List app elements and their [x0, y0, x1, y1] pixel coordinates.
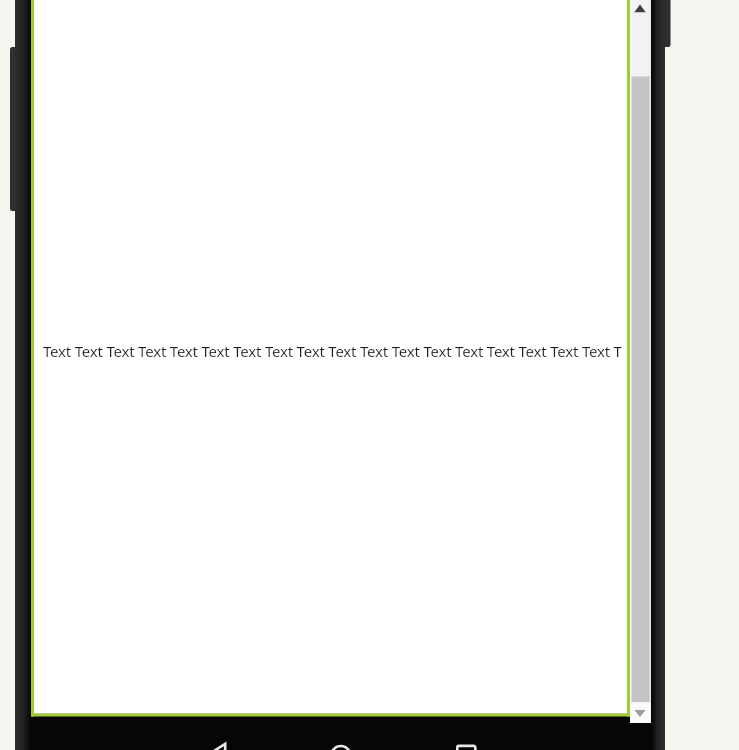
button[interactable] [630, 0, 651, 16]
button[interactable] [324, 735, 358, 750]
button[interactable] [450, 735, 484, 750]
button[interactable] [630, 703, 651, 723]
button[interactable] [200, 735, 234, 750]
staticText: Text Text Text Text Text Text Text Text … [43, 341, 622, 358]
